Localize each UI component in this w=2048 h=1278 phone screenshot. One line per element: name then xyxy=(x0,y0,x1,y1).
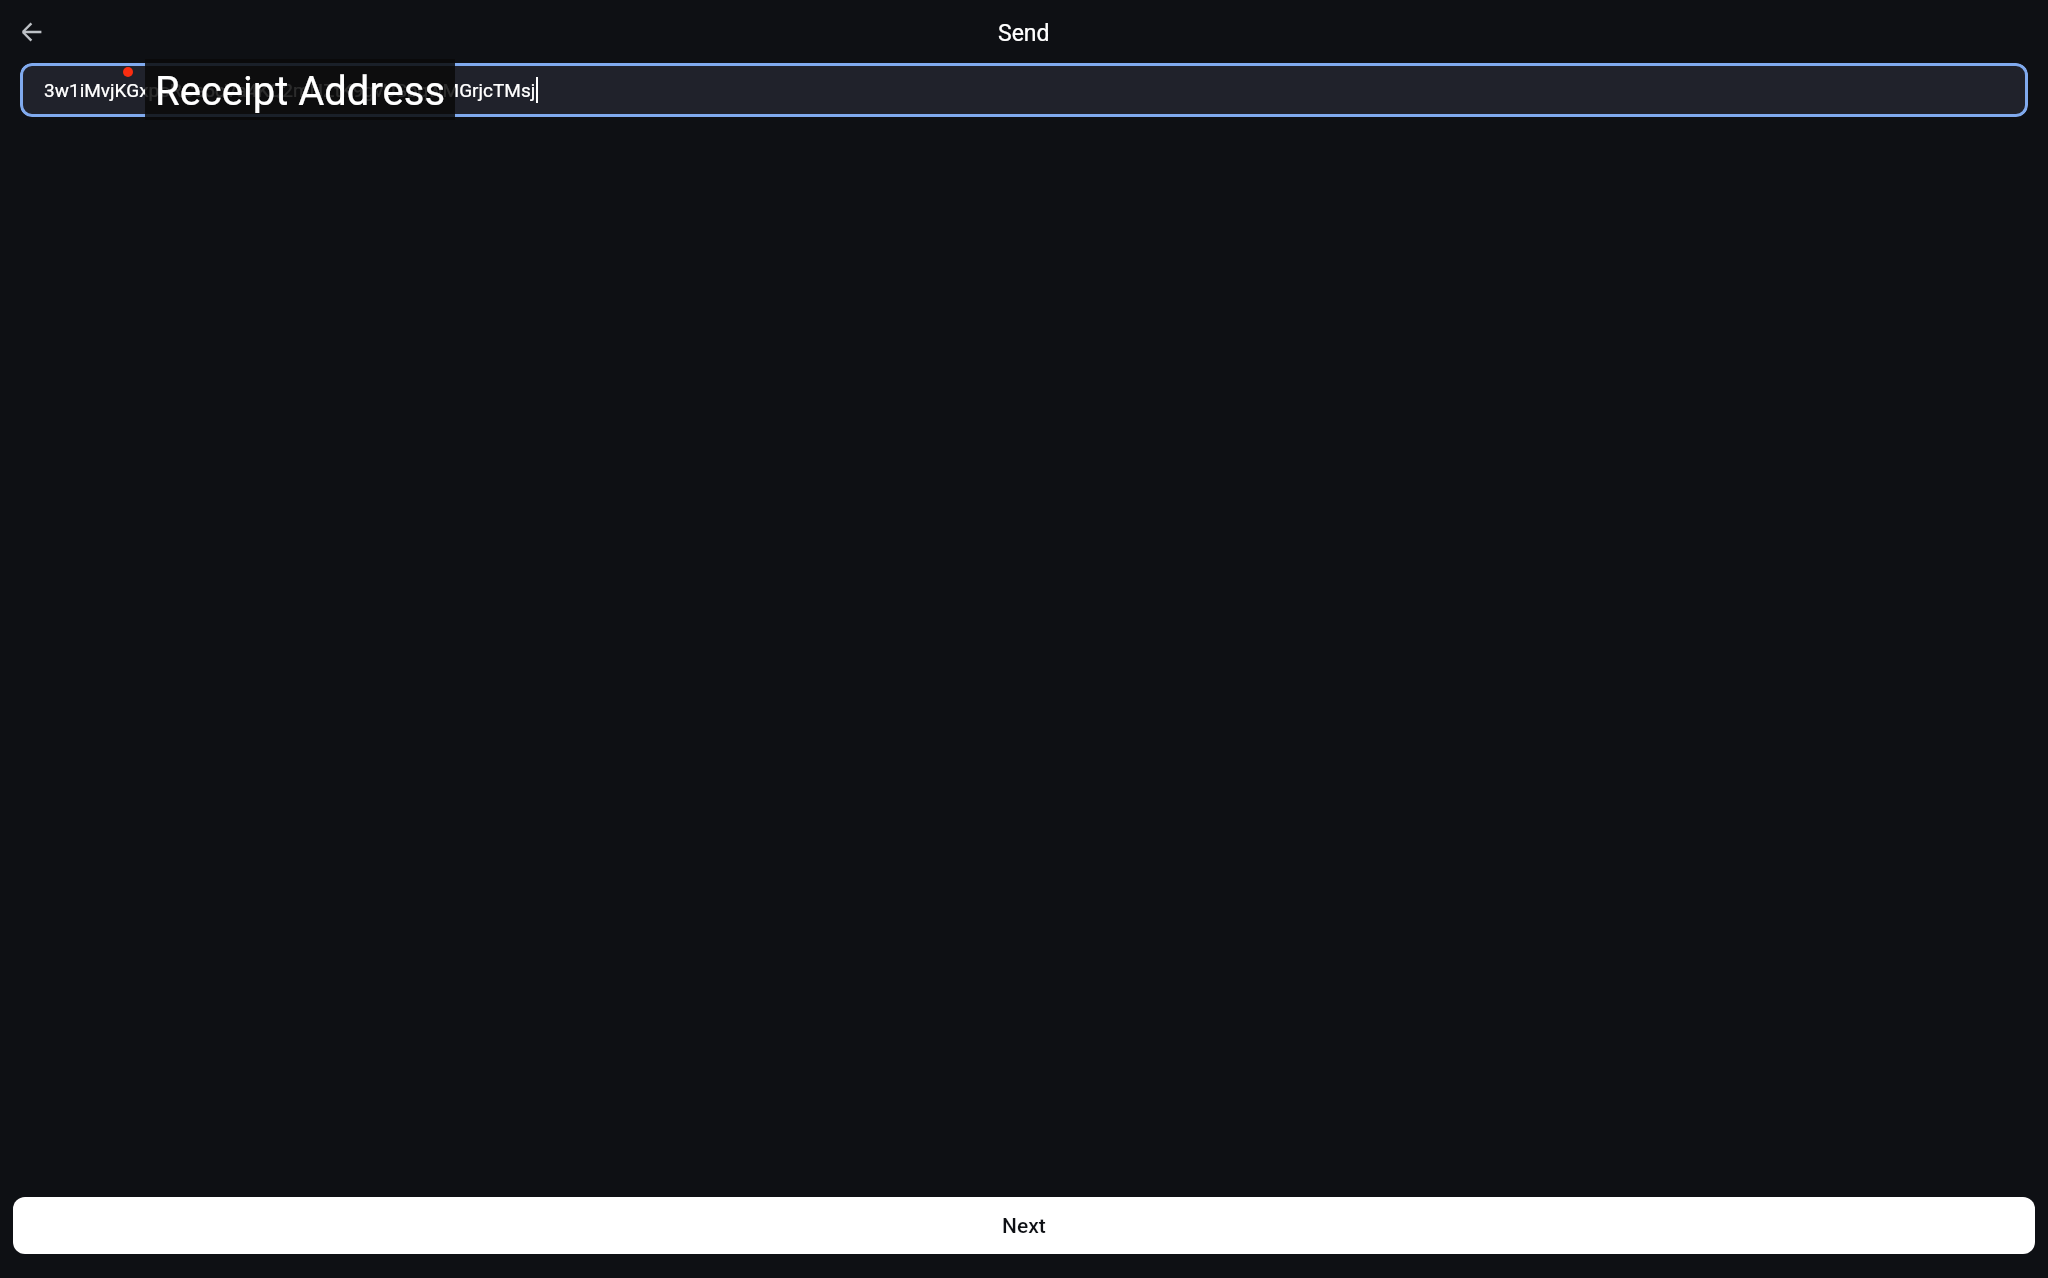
staticText: Receipt Address xyxy=(155,68,446,115)
button[interactable]: 3w1iMvjKGxpoRCe5cVa4KQ2mNZtK9gvUSpqwMGrj… xyxy=(20,63,2028,117)
button[interactable]: Back xyxy=(8,8,56,56)
staticText: Send xyxy=(998,20,1050,47)
staticText: 3w1iMvjKGxpoRCe5cVa4KQ2mNZtK9gvUSpqwMGrj… xyxy=(44,79,536,101)
staticText: Next xyxy=(1002,1214,1046,1239)
button[interactable]: Next xyxy=(13,1197,2035,1254)
